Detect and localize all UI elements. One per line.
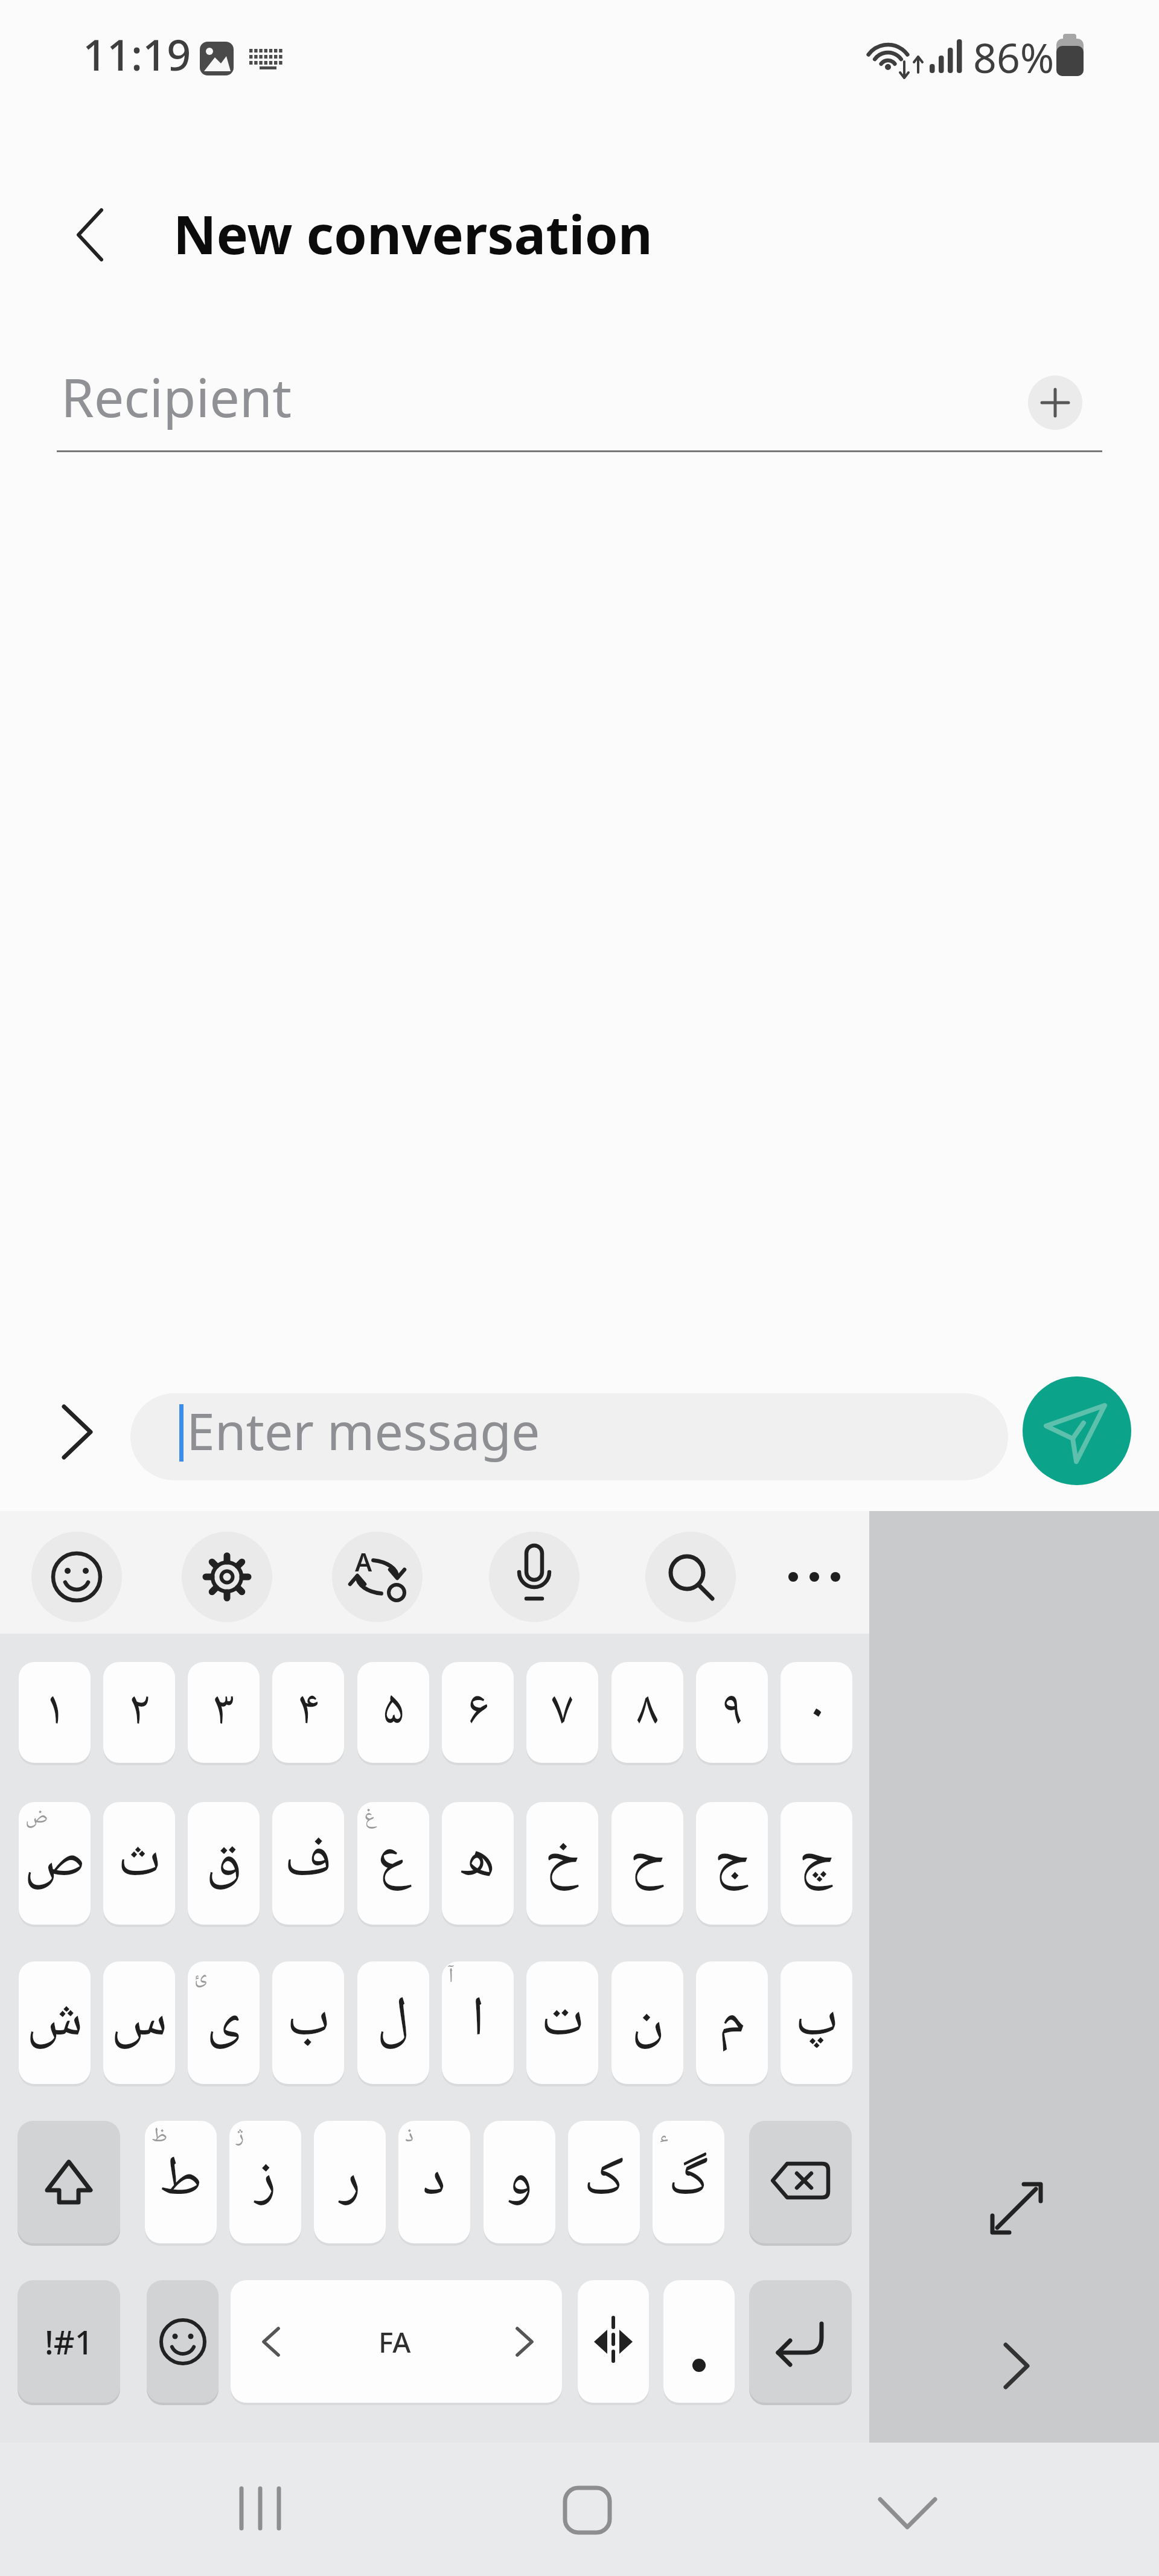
staticText: خ: [544, 1816, 580, 1911]
button[interactable]: [489, 1532, 579, 1622]
button[interactable]: [769, 1532, 860, 1622]
button[interactable]: ی: [188, 1961, 260, 2084]
button[interactable]: ث: [103, 1802, 175, 1925]
button[interactable]: ۲: [103, 1662, 175, 1763]
button[interactable]: [182, 1532, 272, 1622]
staticText: ط: [159, 2135, 202, 2229]
button[interactable]: [48, 1407, 103, 1461]
staticText: ۱: [44, 1672, 66, 1754]
button[interactable]: ک: [568, 2121, 640, 2243]
staticText: ۳: [213, 1672, 235, 1754]
button[interactable]: [869, 2475, 945, 2545]
staticText: ح: [630, 1816, 665, 1911]
button[interactable]: ه: [442, 1802, 514, 1925]
button[interactable]: ح: [611, 1802, 683, 1925]
button[interactable]: ۱: [19, 1662, 91, 1763]
button[interactable]: ط: [145, 2121, 217, 2243]
button[interactable]: خ: [526, 1802, 598, 1925]
staticText: Enter message: [187, 1396, 540, 1465]
staticText: Recipient: [61, 360, 292, 433]
staticText: ذ: [405, 2120, 414, 2155]
staticText: ت: [541, 1975, 584, 2070]
button[interactable]: ر: [314, 2121, 386, 2243]
button[interactable]: ن: [611, 1961, 683, 2084]
button[interactable]: ل: [357, 1961, 429, 2084]
button[interactable]: ۰: [781, 1662, 852, 1763]
staticText: New conversation: [173, 197, 653, 270]
button[interactable]: [18, 2121, 120, 2243]
button[interactable]: ۶: [442, 1662, 514, 1763]
staticText: ا: [471, 1975, 485, 2070]
staticText: ج: [714, 1816, 750, 1911]
staticText: ۶: [467, 1672, 489, 1754]
button[interactable]: گ: [653, 2121, 724, 2243]
button[interactable]: ش: [19, 1961, 91, 2084]
button[interactable]: ۵: [357, 1662, 429, 1763]
staticText: A: [355, 1544, 372, 1579]
button[interactable]: [130, 1393, 1008, 1480]
button[interactable]: [645, 1532, 736, 1622]
button[interactable]: [1023, 1376, 1131, 1485]
button[interactable]: ۷: [526, 1662, 598, 1763]
staticText: 86%: [973, 29, 1055, 85]
button[interactable]: پ: [781, 1961, 852, 2084]
button[interactable]: و: [484, 2121, 555, 2243]
button[interactable]: ۳: [188, 1662, 260, 1763]
button[interactable]: ت: [526, 1961, 598, 2084]
button[interactable]: ا: [442, 1961, 514, 2084]
button[interactable]: م: [696, 1961, 768, 2084]
staticText: ن: [631, 1975, 664, 2070]
button[interactable]: ج: [696, 1802, 768, 1925]
staticText: س: [111, 1975, 168, 2070]
button[interactable]: !#1: [18, 2280, 120, 2403]
staticText: ۷: [552, 1672, 573, 1754]
button[interactable]: [332, 1532, 423, 1622]
button[interactable]: ق: [188, 1802, 260, 1925]
staticText: 11:19: [83, 25, 191, 83]
staticText: ظ: [152, 2120, 168, 2155]
staticText: ر: [339, 2135, 361, 2229]
staticText: ۰: [806, 1672, 828, 1754]
staticText: ئ: [194, 1960, 208, 1995]
button[interactable]: ۹: [696, 1662, 768, 1763]
button[interactable]: [578, 2280, 649, 2403]
staticText: ق: [206, 1816, 242, 1911]
staticText: ل: [377, 1975, 410, 2070]
button[interactable]: [978, 2170, 1056, 2248]
button[interactable]: ۸: [611, 1662, 683, 1763]
button[interactable]: [147, 2280, 219, 2403]
staticText: ۲: [129, 1672, 150, 1754]
staticText: ۸: [637, 1672, 659, 1754]
button[interactable]: ز: [229, 2121, 301, 2243]
button[interactable]: [64, 199, 130, 266]
button[interactable]: [663, 2280, 735, 2403]
button[interactable]: [749, 2280, 852, 2403]
staticText: م: [718, 1975, 746, 2070]
staticText: ژ: [236, 2120, 244, 2155]
staticText: غ: [364, 1801, 377, 1836]
button[interactable]: [553, 2476, 622, 2545]
staticText: د: [423, 2135, 446, 2229]
button[interactable]: [31, 1532, 122, 1622]
button[interactable]: ص: [19, 1802, 91, 1925]
button[interactable]: [217, 2481, 302, 2536]
staticText: آ: [449, 1960, 454, 1995]
button[interactable]: [1028, 376, 1082, 430]
button[interactable]: چ: [781, 1802, 852, 1925]
staticText: ف: [284, 1816, 332, 1911]
staticText: !#1: [45, 2319, 94, 2364]
staticText: و: [506, 2135, 533, 2229]
button[interactable]: د: [398, 2121, 470, 2243]
staticText: ص: [24, 1816, 85, 1911]
staticText: ه: [460, 1816, 496, 1911]
button[interactable]: [984, 2336, 1050, 2397]
button[interactable]: ع: [357, 1802, 429, 1925]
button[interactable]: ف: [272, 1802, 344, 1925]
button[interactable]: [749, 2121, 852, 2243]
button[interactable]: [57, 350, 1023, 447]
button[interactable]: ب: [272, 1961, 344, 2084]
button[interactable]: ۴: [272, 1662, 344, 1763]
staticText: گ: [668, 2135, 709, 2229]
button[interactable]: [231, 2280, 562, 2403]
button[interactable]: س: [103, 1961, 175, 2084]
